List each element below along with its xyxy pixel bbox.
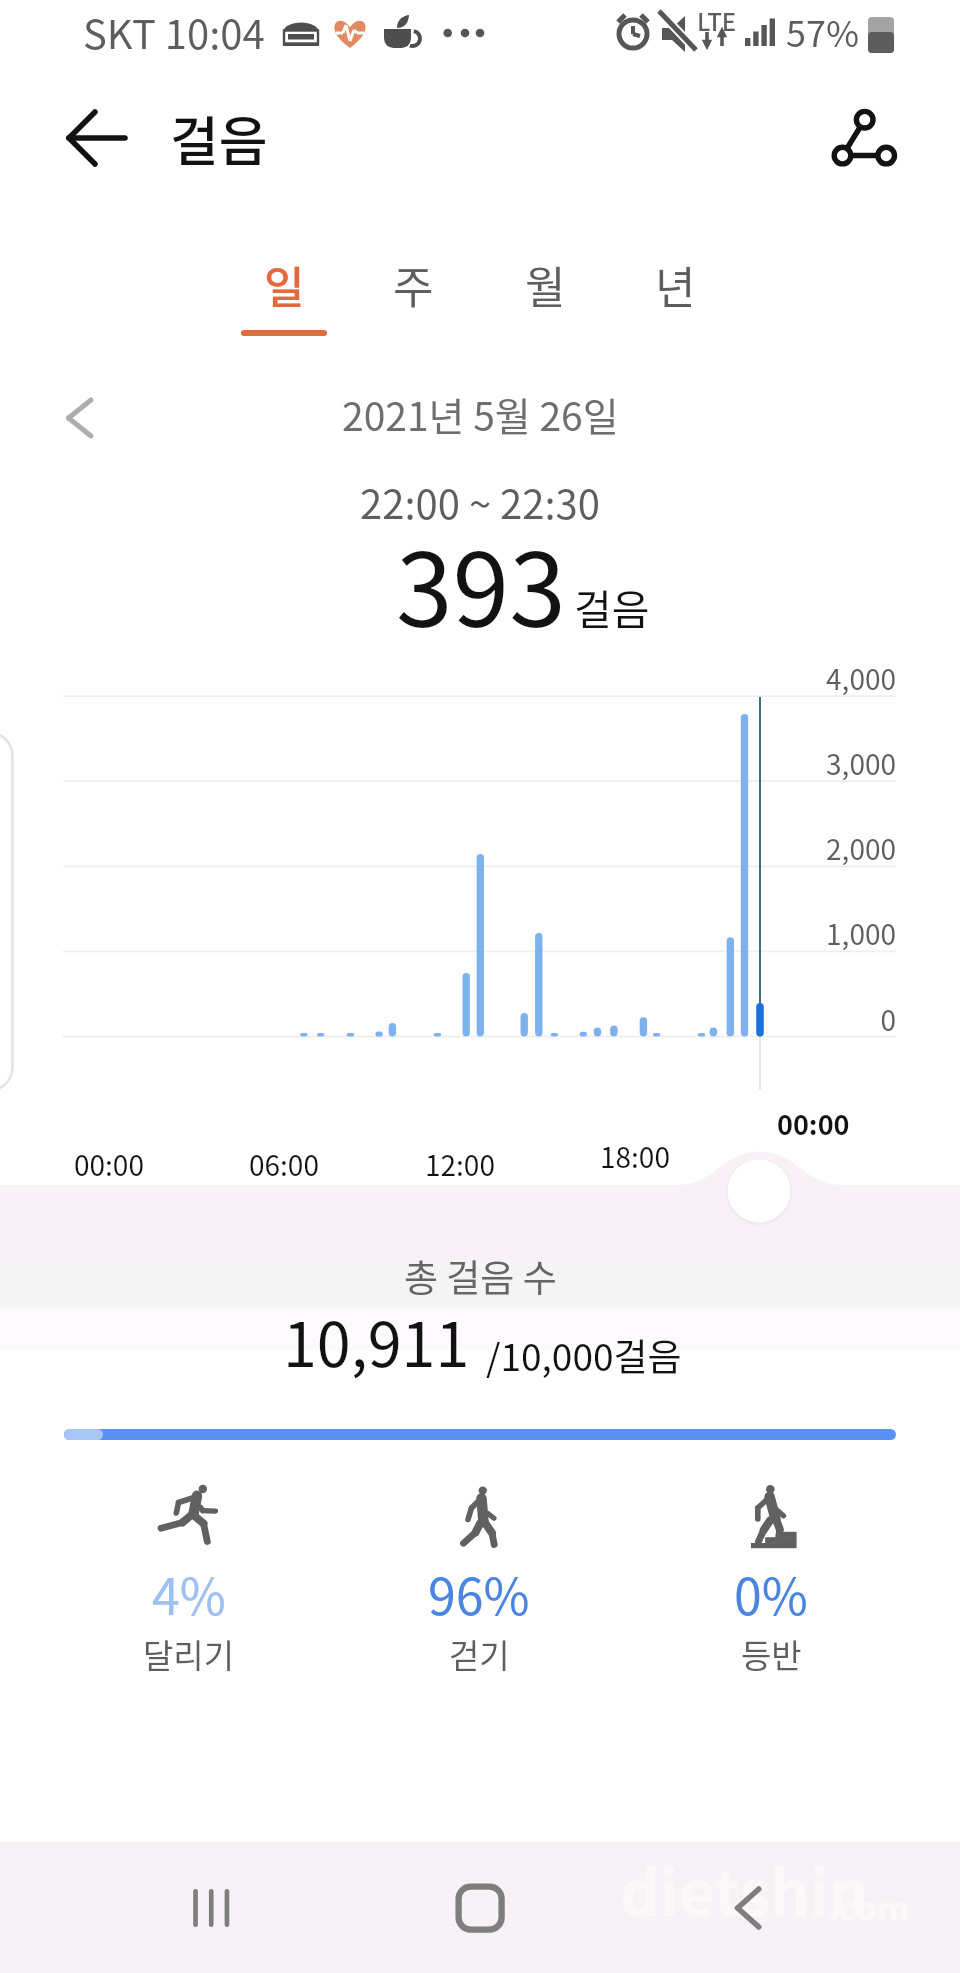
button[interactable]: Share: [815, 90, 911, 186]
staticText: 걸음: [170, 100, 268, 177]
button[interactable]: Back: [708, 1858, 808, 1958]
staticText: /10,000걸음: [486, 1328, 682, 1382]
button[interactable]: 년: [613, 253, 737, 348]
staticText: 393: [396, 509, 566, 657]
staticText: 등반: [741, 1630, 802, 1678]
staticText: 4,000: [0, 658, 896, 699]
button[interactable]: Previous day: [40, 375, 120, 461]
staticText: LTE: [697, 3, 737, 38]
staticText: 4%: [152, 1557, 226, 1629]
staticText: 달리기: [143, 1630, 235, 1678]
staticText: 00:00: [777, 1104, 850, 1143]
staticText: 주: [393, 253, 434, 317]
staticText: dietshin: [620, 1844, 869, 1934]
staticText: 2,000: [0, 828, 896, 869]
staticText: 걷기: [449, 1630, 510, 1678]
staticText: 총 걸음 수: [404, 1249, 557, 1303]
staticText: SKT 10:04: [83, 3, 265, 61]
staticText: 18:00: [600, 1136, 670, 1177]
button[interactable]: 96%: [369, 1472, 589, 1684]
staticText: 0%: [734, 1557, 808, 1629]
button[interactable]: 월: [483, 253, 607, 348]
staticText: 년: [655, 253, 696, 317]
button[interactable]: 일: [222, 253, 346, 348]
staticText: 일: [264, 253, 305, 317]
button[interactable]: Recent apps: [161, 1858, 261, 1958]
button[interactable]: Home: [430, 1858, 530, 1958]
staticText: 10,911: [283, 1296, 470, 1384]
staticText: 1,000: [0, 913, 896, 954]
staticText: 3,000: [0, 743, 896, 784]
button[interactable]: Back: [47, 88, 147, 188]
staticText: 12:00: [425, 1144, 495, 1185]
staticText: 22:00 ~ 22:30: [360, 473, 600, 531]
staticText: 57%: [786, 5, 860, 57]
button[interactable]: 0%: [661, 1472, 881, 1684]
staticText: 걸음: [574, 577, 650, 636]
staticText: 06:00: [249, 1144, 319, 1185]
button[interactable]: 4%: [79, 1472, 299, 1684]
staticText: 0: [0, 999, 896, 1040]
staticText: 2021년 5월 26일: [342, 386, 619, 442]
button[interactable]: 주: [351, 253, 475, 348]
staticText: 00:00: [74, 1144, 144, 1185]
staticText: 월: [525, 253, 566, 317]
staticText: 96%: [428, 1557, 530, 1629]
